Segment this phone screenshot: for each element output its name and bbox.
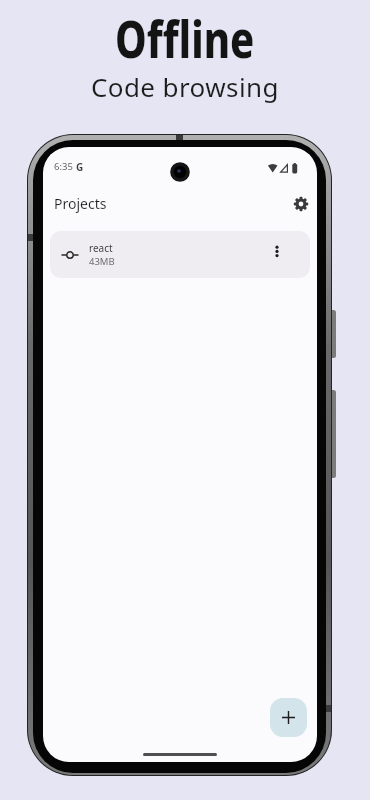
staticText: Offline [115,4,255,72]
staticText: Projects [54,194,107,213]
staticText: G [76,160,84,174]
button[interactable] [293,196,309,212]
button[interactable]: react [50,231,310,278]
button[interactable] [270,698,307,737]
button[interactable] [270,244,284,265]
staticText: 43MB [89,255,115,268]
staticText: react [89,241,113,255]
staticText: Code browsing [91,69,279,104]
staticText: 6:35 [54,160,73,173]
